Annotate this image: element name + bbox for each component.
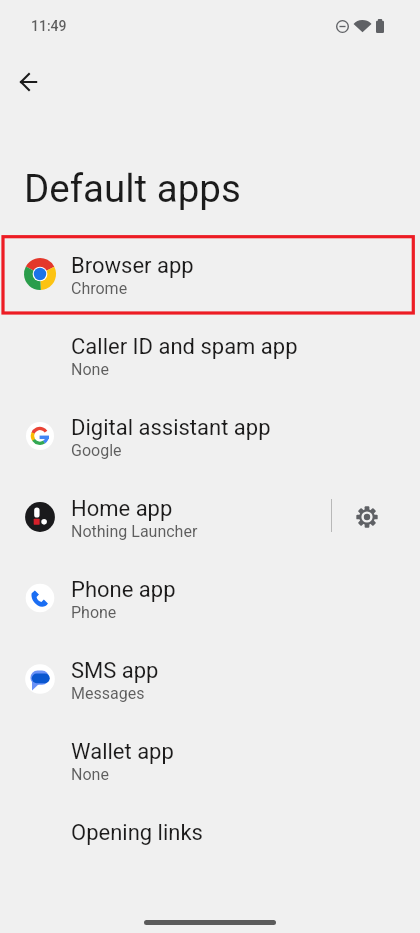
button[interactable]: Navigate up: [4, 58, 52, 106]
staticText: Digital assistant app: [71, 415, 271, 441]
button[interactable]: Phone app: [0, 560, 420, 641]
button[interactable]: Opening links: [0, 803, 420, 884]
button[interactable]: Digital assistant app: [0, 398, 420, 479]
button[interactable]: Caller ID and spam app: [0, 317, 420, 398]
staticText: 11:49: [31, 18, 67, 34]
staticText: Nothing Launcher: [71, 522, 198, 541]
staticText: Phone: [71, 603, 117, 622]
staticText: None: [71, 765, 109, 784]
staticText: Opening links: [71, 820, 203, 846]
staticText: Default apps: [24, 166, 241, 211]
staticText: Google: [71, 441, 122, 460]
staticText: Home app: [71, 496, 173, 522]
staticText: Wallet app: [71, 739, 174, 765]
button[interactable]: Browser app: [0, 236, 420, 317]
button[interactable]: Home app: [0, 479, 420, 560]
staticText: Messages: [71, 684, 145, 703]
staticText: Chrome: [71, 279, 128, 298]
staticText: Browser app: [71, 253, 194, 279]
staticText: None: [71, 360, 109, 379]
button[interactable]: Home app settings: [344, 494, 390, 540]
button[interactable]: Wallet app: [0, 722, 420, 803]
button[interactable]: SMS app: [0, 641, 420, 722]
staticText: Caller ID and spam app: [71, 334, 298, 360]
staticText: SMS app: [71, 658, 159, 684]
staticText: Phone app: [71, 577, 176, 603]
